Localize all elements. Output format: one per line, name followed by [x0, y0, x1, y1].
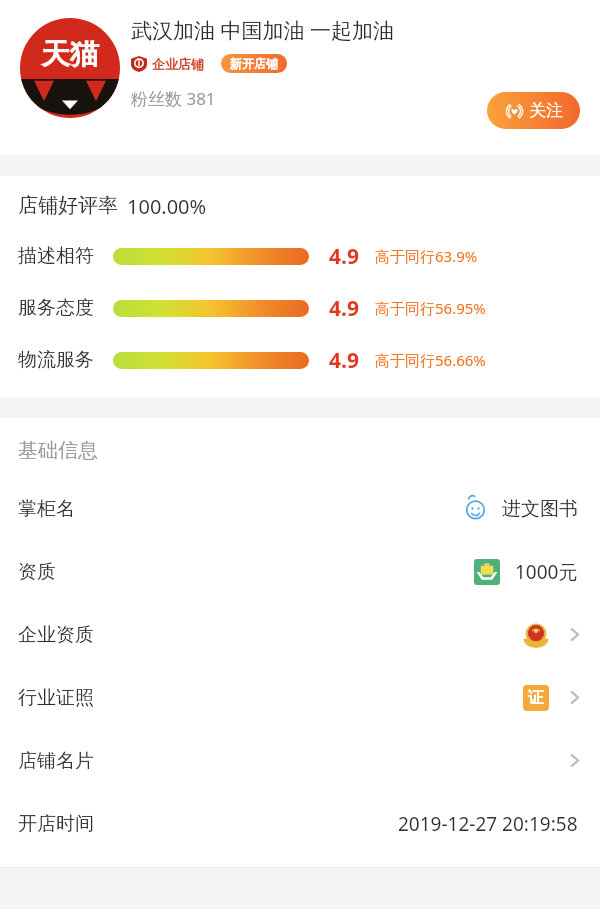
staticText: 企业资质	[18, 623, 94, 647]
other: 企业资质	[567, 627, 582, 642]
other: Business license	[523, 622, 549, 648]
staticText: 高于同行56.95%	[375, 298, 486, 318]
staticText: 店铺好评率	[18, 193, 118, 218]
staticText: 服务态度	[18, 296, 94, 320]
button[interactable]: 开店时间	[0, 792, 600, 855]
button[interactable]: 企业资质	[0, 603, 600, 666]
staticText: 武汉加油 中国加油 一起加油	[131, 16, 394, 45]
staticText: 店铺名片	[18, 749, 94, 773]
staticText: 4.9	[329, 346, 359, 375]
button[interactable]: 服务态度	[0, 293, 600, 323]
button[interactable]: 描述相符	[0, 241, 600, 271]
other: Industry license	[523, 685, 549, 711]
staticText: 新开店铺	[230, 56, 278, 71]
staticText: 掌柜名	[18, 497, 75, 521]
staticText: 资质	[18, 560, 56, 584]
staticText: 1000元	[515, 559, 578, 585]
staticText: 高于同行63.9%	[375, 246, 478, 266]
staticText: 高于同行56.66%	[375, 350, 486, 370]
other: Wangwang	[464, 497, 487, 520]
button[interactable]: 物流服务	[0, 345, 600, 375]
staticText: 基础信息	[18, 438, 98, 463]
staticText: 2019-12-27 20:19:58	[398, 811, 578, 837]
other: 店铺名片	[567, 753, 582, 768]
button[interactable]: 店铺名片	[0, 729, 600, 792]
staticText: 关注	[529, 100, 563, 121]
staticText: 证	[528, 688, 544, 708]
staticText: 粉丝数 381	[131, 87, 216, 110]
staticText: 物流服务	[18, 348, 94, 372]
staticText: 100.00%	[127, 193, 207, 220]
staticText: 天猫	[41, 36, 99, 73]
staticText: 开店时间	[18, 812, 94, 836]
button[interactable]: 新开店铺	[221, 54, 287, 73]
staticText: 描述相符	[18, 244, 94, 268]
button[interactable]: 行业证照	[0, 666, 600, 729]
button[interactable]: 资质	[0, 540, 600, 603]
other: Deposit	[474, 559, 500, 585]
button[interactable]: 掌柜名	[0, 477, 600, 540]
staticText: 行业证照	[18, 686, 94, 710]
button[interactable]: 企业店铺	[131, 56, 204, 72]
staticText: 进文图书	[502, 497, 578, 521]
button[interactable]: 关注	[487, 92, 580, 129]
other: 行业证照	[567, 690, 582, 705]
staticText: 企业店铺	[152, 56, 204, 72]
staticText: 4.9	[329, 242, 359, 271]
staticText: 4.9	[329, 294, 359, 323]
